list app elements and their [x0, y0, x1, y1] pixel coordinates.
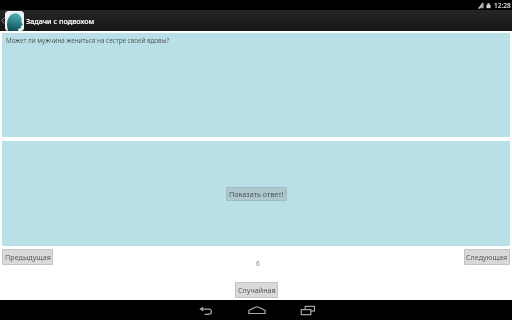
- button[interactable]: Следующая: [464, 249, 510, 265]
- staticText: Предыдущая: [5, 252, 51, 262]
- button[interactable]: Показать ответ!: [226, 187, 287, 201]
- button[interactable]: Recent apps: [282, 300, 333, 320]
- button[interactable]: Задачи с подвохом: [0, 10, 99, 31]
- button[interactable]: Случайная: [235, 282, 278, 298]
- staticText: Показать ответ!: [229, 189, 284, 199]
- staticText: Следующая: [466, 252, 508, 262]
- staticText: Может ли мужчина жениться на сестре свое…: [6, 36, 170, 45]
- staticText: Задачи с подвохом: [26, 16, 95, 26]
- button[interactable]: Home: [231, 300, 282, 320]
- staticText: 6: [256, 259, 260, 268]
- button[interactable]: Предыдущая: [2, 249, 53, 265]
- staticText: 12:28: [494, 1, 511, 10]
- button[interactable]: Back: [180, 300, 231, 320]
- staticText: Случайная: [238, 285, 276, 295]
